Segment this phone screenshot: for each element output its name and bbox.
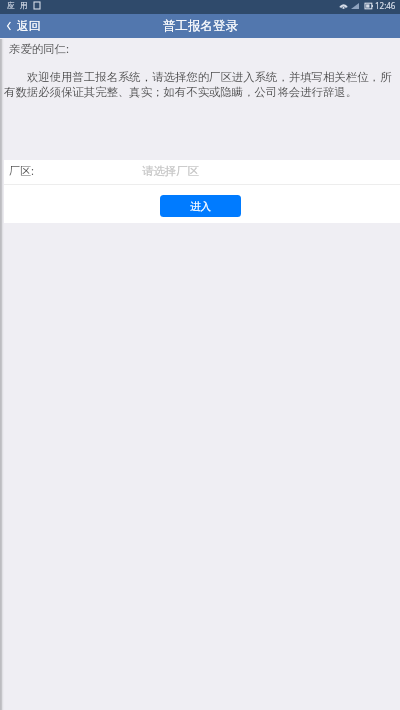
staticText: 欢迎使用普工报名系统，请选择您的厂区进入系统，并填写相关栏位，所有数据必须保证其… [4,69,396,99]
button[interactable]: 进入 [160,195,241,217]
staticText: 进入 [190,200,211,213]
staticText: 亲爱的同仁: [9,41,70,57]
staticText: 12:46 [375,0,396,11]
staticText: 请选择厂区 [142,164,199,178]
staticText: 应 [7,1,15,10]
button[interactable]: 返回 [0,14,49,38]
staticText: 普工报名登录 [163,18,238,34]
button[interactable]: 厂区: [0,160,400,184]
staticText: 厂区: [9,163,34,178]
staticText: 用 [20,1,28,10]
staticText: 返回 [17,19,41,34]
